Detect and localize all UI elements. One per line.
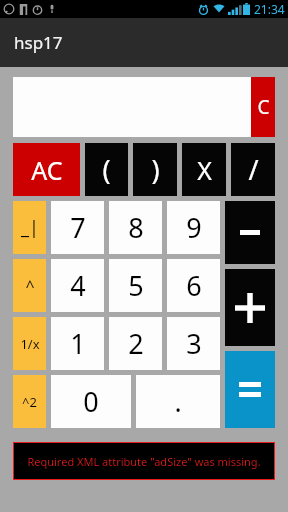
staticText: 5 [128,267,144,304]
staticText: . [174,383,182,420]
staticText: ( [102,151,111,188]
button[interactable]: 0 [51,375,131,428]
staticText: AC [31,153,63,187]
staticText: 4 [70,267,86,304]
staticText: C [257,94,270,120]
button[interactable]: Plus [225,269,275,346]
button[interactable]: 5 [109,259,162,312]
button[interactable]: 1 [51,317,104,370]
staticText: Required XML attribute "adSize" was miss… [27,454,261,469]
button[interactable]: 7 [51,201,104,254]
staticText: ^ [25,275,35,297]
staticText: 1/x [20,335,40,353]
button[interactable]: ) [133,143,177,196]
staticText: 2 [128,325,144,362]
button[interactable]: Minus [225,201,275,264]
button[interactable]: AC [13,143,80,196]
button[interactable]: 9 [167,201,220,254]
button[interactable]: Required XML attribute "adSize" was miss… [13,442,275,480]
staticText: 9 [186,209,202,246]
staticText: hsp17 [14,31,63,54]
button[interactable]: Equals [225,351,275,428]
button[interactable]: 3 [167,317,220,370]
staticText: 21:34 [254,1,285,17]
button[interactable]: C [251,77,275,137]
staticText: / [248,151,259,188]
staticText: 7 [70,209,86,246]
staticText: X [197,153,212,187]
staticText: ^2 [22,393,37,411]
button[interactable]: _| [13,201,46,254]
button[interactable]: 2 [109,317,162,370]
button[interactable]: 6 [167,259,220,312]
staticText: 1 [70,325,86,362]
button[interactable]: ^2 [13,375,46,428]
button[interactable]: ^ [13,259,46,312]
button[interactable]: . [136,375,220,428]
button[interactable]: 8 [109,201,162,254]
staticText: 6 [186,267,202,304]
button[interactable]: ( [85,143,128,196]
staticText: 8 [128,209,144,246]
button[interactable]: 1/x [13,317,46,370]
staticText: _| [21,215,39,240]
staticText: 0 [83,383,99,420]
button[interactable]: X [182,143,226,196]
staticText: 3 [186,325,202,362]
button[interactable]: 4 [51,259,104,312]
button[interactable]: / [231,143,275,196]
staticText: ) [151,151,160,188]
